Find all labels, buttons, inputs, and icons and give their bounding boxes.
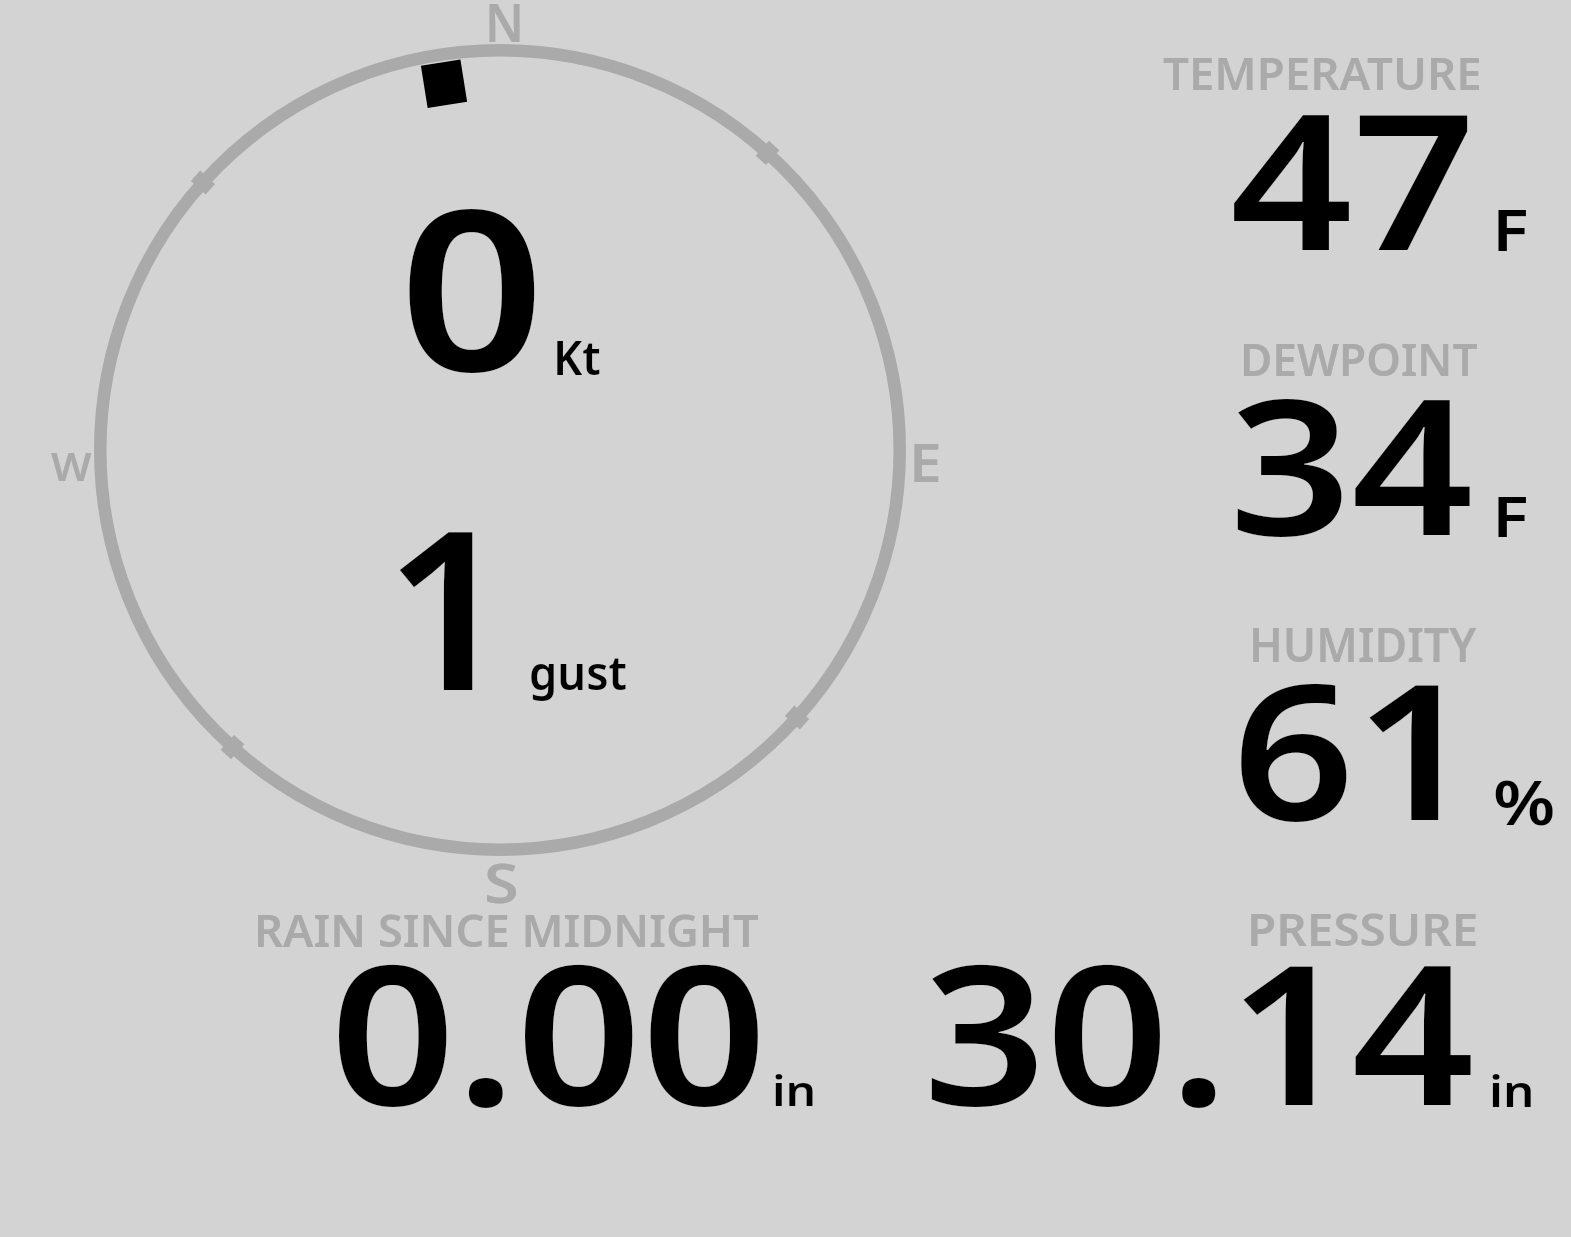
staticText: 0	[399, 132, 545, 436]
staticText: %	[1493, 759, 1556, 843]
staticText: TEMPERATURE	[1163, 41, 1482, 103]
staticText: W	[51, 439, 92, 493]
staticText: gust	[529, 639, 627, 704]
staticText: Kt	[553, 325, 601, 390]
staticText: 1	[384, 454, 513, 755]
staticText: E	[909, 426, 942, 496]
staticText: DEWPOINT	[1240, 328, 1478, 390]
button[interactable]: Humidity 61 percent	[1000, 615, 1571, 865]
staticText: HUMIDITY	[1249, 612, 1477, 676]
staticText: 61	[1232, 618, 1478, 876]
staticText: F	[1492, 189, 1530, 268]
button[interactable]: Dew point 34 degrees Fahrenheit	[1000, 330, 1571, 580]
staticText: S	[484, 846, 520, 919]
staticText: PRESSURE	[1247, 898, 1479, 960]
staticText: RAIN SINCE MIDNIGHT	[254, 899, 759, 960]
staticText: 34	[1229, 333, 1474, 591]
staticText: in	[1489, 1061, 1535, 1119]
staticText: N	[485, 0, 524, 58]
button[interactable]: Temperature 47 degrees Fahrenheit	[1000, 40, 1571, 290]
staticText: 47	[1230, 48, 1476, 305]
staticText: 0.00	[330, 899, 768, 1162]
button[interactable]: Rain since midnight 0.00 inches	[200, 900, 880, 1130]
button[interactable]: Wind 0 knots, gusting 1, from the north	[60, 10, 960, 890]
staticText: F	[1492, 477, 1530, 554]
staticText: in	[772, 1062, 817, 1119]
button[interactable]: Pressure 30.14 inches of mercury	[900, 900, 1571, 1130]
staticText: 30.14	[923, 899, 1475, 1162]
